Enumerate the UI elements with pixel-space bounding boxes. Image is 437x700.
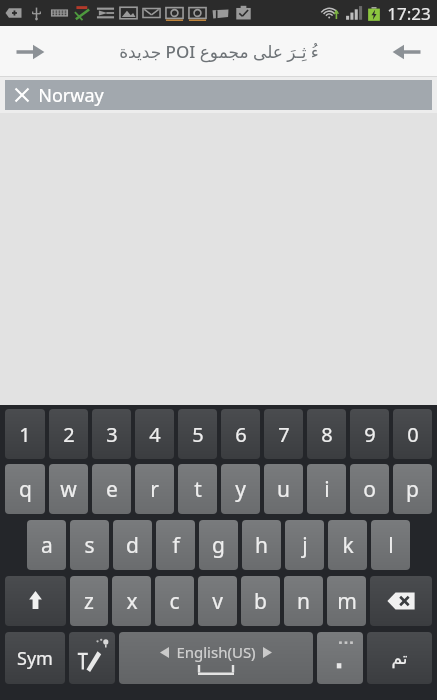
button[interactable]: d [113, 520, 152, 570]
staticText: z [84, 587, 94, 616]
staticText: y [235, 475, 246, 504]
staticText: 8 [321, 421, 333, 448]
staticText: c [169, 587, 180, 616]
button[interactable]: 9 [350, 409, 389, 459]
button[interactable]: k [328, 520, 367, 570]
staticText: 17:23 [387, 2, 431, 25]
button[interactable]: p [393, 464, 432, 514]
button[interactable]: s [70, 520, 109, 570]
staticText: h [255, 531, 268, 560]
button[interactable]: b [241, 576, 280, 626]
staticText: 6 [235, 421, 247, 448]
staticText: 0 [407, 421, 419, 448]
button[interactable]: 4 [135, 409, 174, 459]
staticText: English(US) [176, 642, 256, 662]
staticText: 5 [192, 421, 204, 448]
button[interactable]: a [27, 520, 66, 570]
button[interactable]: v [198, 576, 237, 626]
button[interactable]: Forward [0, 26, 60, 77]
button[interactable]: j [285, 520, 324, 570]
staticText: n [297, 587, 310, 616]
button[interactable]: Back [377, 26, 437, 77]
staticText: f [172, 531, 180, 560]
staticText: x [126, 587, 138, 616]
staticText: تم [391, 648, 408, 668]
staticText: u [277, 475, 290, 504]
staticText: a [41, 531, 53, 560]
button[interactable]: Space, English(US) [119, 632, 313, 684]
button[interactable]: 3 [92, 409, 131, 459]
button[interactable]: z [70, 576, 108, 626]
staticText: j [302, 531, 308, 560]
staticText: r [150, 475, 159, 504]
staticText: 2 [63, 421, 75, 448]
button[interactable]: Handwriting [69, 632, 115, 684]
button[interactable]: 2 [49, 409, 88, 459]
button[interactable]: m [327, 576, 366, 626]
staticText: g [212, 531, 225, 560]
button[interactable]: x [112, 576, 151, 626]
button[interactable]: i [307, 464, 346, 514]
staticText: b [254, 587, 267, 616]
button[interactable]: y [221, 464, 260, 514]
button[interactable]: w [49, 464, 88, 514]
staticText: l [388, 531, 394, 560]
button[interactable]: l [371, 520, 410, 570]
button[interactable]: q [5, 464, 45, 514]
staticText: 9 [364, 421, 376, 448]
button[interactable]: g [199, 520, 238, 570]
button[interactable]: Sym [5, 632, 65, 684]
button[interactable]: Shift [5, 576, 66, 626]
staticText: Norway [38, 83, 104, 108]
button[interactable]: u [264, 464, 303, 514]
button[interactable]: t [178, 464, 217, 514]
button[interactable]: 7 [264, 409, 303, 459]
staticText: d [126, 531, 139, 560]
button[interactable]: o [350, 464, 389, 514]
staticText: جديدة POI ءُ ثِـرَ على مجموع [119, 40, 319, 63]
staticText: 3 [106, 421, 118, 448]
button[interactable]: e [92, 464, 131, 514]
staticText: v [212, 587, 223, 616]
button[interactable]: n [284, 576, 323, 626]
button[interactable]: r [135, 464, 174, 514]
staticText: p [406, 475, 419, 504]
staticText: 1 [19, 421, 31, 448]
button[interactable]: Period [317, 632, 363, 684]
button[interactable]: Backspace [370, 576, 432, 626]
staticText: 4 [149, 421, 161, 448]
button[interactable]: c [155, 576, 194, 626]
staticText: 7 [278, 421, 290, 448]
staticText: s [84, 531, 95, 560]
button[interactable]: h [242, 520, 281, 570]
staticText: m [337, 587, 357, 616]
staticText: Sym [17, 646, 53, 671]
button[interactable]: Norway [5, 80, 432, 110]
button[interactable]: 1 [5, 409, 45, 459]
staticText: t [194, 475, 202, 504]
staticText: e [106, 475, 118, 504]
button[interactable]: تم [367, 632, 432, 684]
staticText: w [60, 475, 77, 504]
staticText: o [363, 475, 376, 504]
staticText: k [342, 531, 354, 560]
button[interactable]: 6 [221, 409, 260, 459]
staticText: q [19, 475, 32, 504]
button[interactable]: 0 [393, 409, 432, 459]
button[interactable]: 8 [307, 409, 346, 459]
staticText: i [324, 475, 330, 504]
button[interactable]: 5 [178, 409, 217, 459]
button[interactable]: f [156, 520, 195, 570]
